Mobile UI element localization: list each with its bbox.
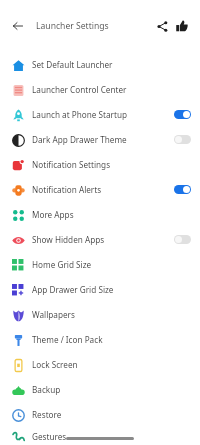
button[interactable]: Restore (0, 402, 200, 427)
button[interactable]: Share (152, 16, 172, 36)
button[interactable]: Back (8, 16, 28, 36)
button[interactable]: Show Hidden Apps (0, 227, 200, 252)
staticText: Launcher Control Center (32, 84, 191, 95)
button[interactable]: Lock Screen (0, 352, 200, 377)
staticText: Notification Settings (32, 159, 191, 170)
staticText: Gestures (32, 431, 191, 442)
button[interactable]: Notification Alerts (0, 177, 200, 202)
staticText: Show Hidden Apps (32, 234, 174, 245)
staticText: Home Grid Size (32, 259, 191, 270)
button[interactable]: Wallpapers (0, 302, 200, 327)
button[interactable]: Dark App Drawer Theme (0, 127, 200, 152)
button[interactable]: Launch at Phone Startup (0, 102, 200, 127)
button[interactable]: Home Grid Size (0, 252, 200, 277)
staticText: Dark App Drawer Theme (32, 134, 174, 145)
button[interactable]: Launcher Control Center (0, 77, 200, 102)
staticText: Set Default Launcher (32, 59, 191, 70)
button[interactable]: Toggle off (174, 235, 191, 244)
button[interactable]: Set Default Launcher (0, 52, 200, 77)
staticText: More Apps (32, 209, 191, 220)
staticText: Notification Alerts (32, 184, 174, 195)
button[interactable]: More Apps (0, 202, 200, 227)
staticText: App Drawer Grid Size (32, 284, 191, 295)
button[interactable]: Notification Settings (0, 152, 200, 177)
button[interactable]: App Drawer Grid Size (0, 277, 200, 302)
staticText: Launcher Settings (36, 20, 109, 32)
button[interactable]: Rate (172, 16, 192, 36)
button[interactable]: Theme / Icon Pack (0, 327, 200, 352)
button[interactable]: Backup (0, 377, 200, 402)
staticText: Theme / Icon Pack (32, 334, 191, 345)
button[interactable]: Toggle off (174, 135, 191, 144)
staticText: Restore (32, 409, 191, 420)
staticText: Wallpapers (32, 309, 191, 320)
staticText: Backup (32, 384, 191, 395)
button[interactable]: Toggle on (174, 110, 191, 119)
staticText: Launch at Phone Startup (32, 109, 174, 120)
staticText: Lock Screen (32, 359, 191, 370)
button[interactable]: Gestures (0, 427, 200, 445)
button[interactable]: Toggle on (174, 185, 191, 194)
